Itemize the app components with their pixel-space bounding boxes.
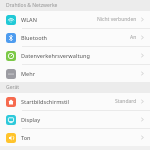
staticText: Bluetooth: [21, 34, 48, 41]
staticText: Drahtlos & Netzwerke: [6, 2, 58, 9]
button[interactable]: Startbildschirmstil: [0, 93, 150, 110]
staticText: Mehr: [21, 70, 35, 77]
button[interactable]: WLAN: [0, 11, 150, 28]
button[interactable]: Mehr: [0, 65, 150, 82]
staticText: An: [130, 34, 137, 41]
staticText: Standard: [115, 98, 137, 105]
staticText: WLAN: [21, 16, 37, 23]
button[interactable]: Ton: [0, 129, 150, 146]
button[interactable]: Bluetooth: [0, 29, 150, 46]
staticText: Ton: [21, 134, 31, 141]
button[interactable]: Display: [0, 111, 150, 128]
staticText: Datenverkehrsverwaltung: [21, 52, 90, 59]
button[interactable]: Datenverkehrsverwaltung: [0, 47, 150, 64]
staticText: Startbildschirmstil: [21, 98, 70, 105]
staticText: Gerät: [6, 84, 20, 91]
staticText: Nicht verbunden: [97, 16, 137, 23]
staticText: Display: [21, 116, 41, 123]
